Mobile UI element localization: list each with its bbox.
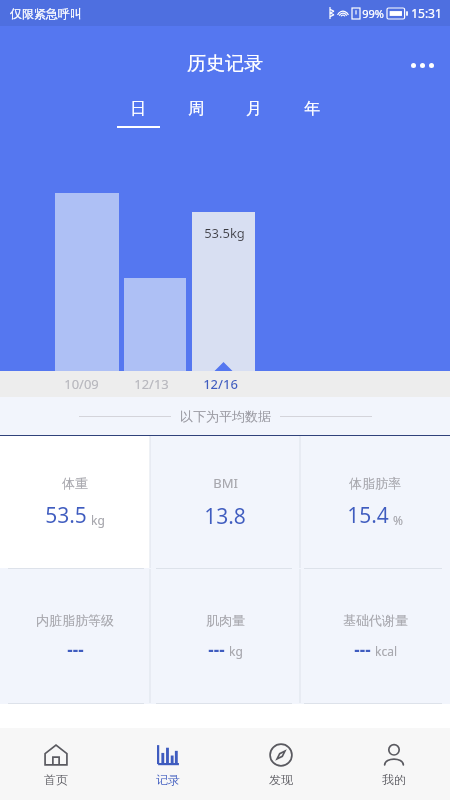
button[interactable]: 内脏脂肪等级 <box>0 569 150 703</box>
button[interactable]: 发现 <box>224 728 337 800</box>
staticText: 年 <box>304 99 320 119</box>
staticText: 53.5kg <box>204 224 245 242</box>
staticText: 13.8 <box>204 502 246 531</box>
button[interactable]: 肌肉量 <box>150 569 300 703</box>
staticText: 仅限紧急呼叫 <box>10 6 82 21</box>
button[interactable]: 周 <box>167 99 225 128</box>
button[interactable]: 53.5kg <box>199 222 249 244</box>
staticText: BMI <box>213 474 238 492</box>
staticText: 内脏脂肪等级 <box>36 612 114 628</box>
staticText: 15:31 <box>411 5 442 21</box>
button[interactable]: 基础代谢量 <box>300 569 450 703</box>
button[interactable]: 体脂肪率 <box>300 436 450 568</box>
staticText: 记录 <box>156 772 180 787</box>
staticText: --- <box>354 638 371 661</box>
staticText: 以下为平均数据 <box>180 408 271 424</box>
staticText: 周 <box>188 99 204 119</box>
button[interactable]: 日 <box>109 99 167 128</box>
staticText: 53.5 <box>45 501 87 530</box>
staticText: 体重 <box>62 475 88 491</box>
staticText: 12/16 <box>203 375 238 393</box>
button[interactable]: 体重 <box>0 436 150 568</box>
staticText: --- <box>208 638 225 661</box>
button[interactable]: 年 <box>283 99 341 128</box>
staticText: 10/09 <box>64 375 99 393</box>
staticText: kg <box>229 643 243 659</box>
staticText: 15.4 <box>347 501 389 530</box>
button[interactable]: 月 <box>225 99 283 128</box>
staticText: 日 <box>130 99 146 119</box>
staticText: kcal <box>375 643 397 659</box>
button[interactable]: 记录 <box>112 728 224 800</box>
staticText: 99% <box>362 6 384 21</box>
button[interactable]: 首页 <box>0 728 112 800</box>
staticText: 我的 <box>382 772 406 787</box>
staticText: 基础代谢量 <box>343 612 408 628</box>
staticText: % <box>393 512 403 528</box>
staticText: 体脂肪率 <box>349 475 401 491</box>
staticText: 12/13 <box>134 375 169 393</box>
button[interactable]: More options <box>404 52 440 78</box>
button[interactable]: BMI <box>150 436 300 568</box>
staticText: 历史记录 <box>187 52 263 76</box>
staticText: --- <box>67 638 84 661</box>
staticText: 肌肉量 <box>206 612 245 628</box>
staticText: 首页 <box>44 772 68 787</box>
staticText: kg <box>91 512 105 528</box>
staticText: 月 <box>246 99 262 119</box>
button[interactable]: 我的 <box>337 728 450 800</box>
staticText: 发现 <box>269 772 293 787</box>
